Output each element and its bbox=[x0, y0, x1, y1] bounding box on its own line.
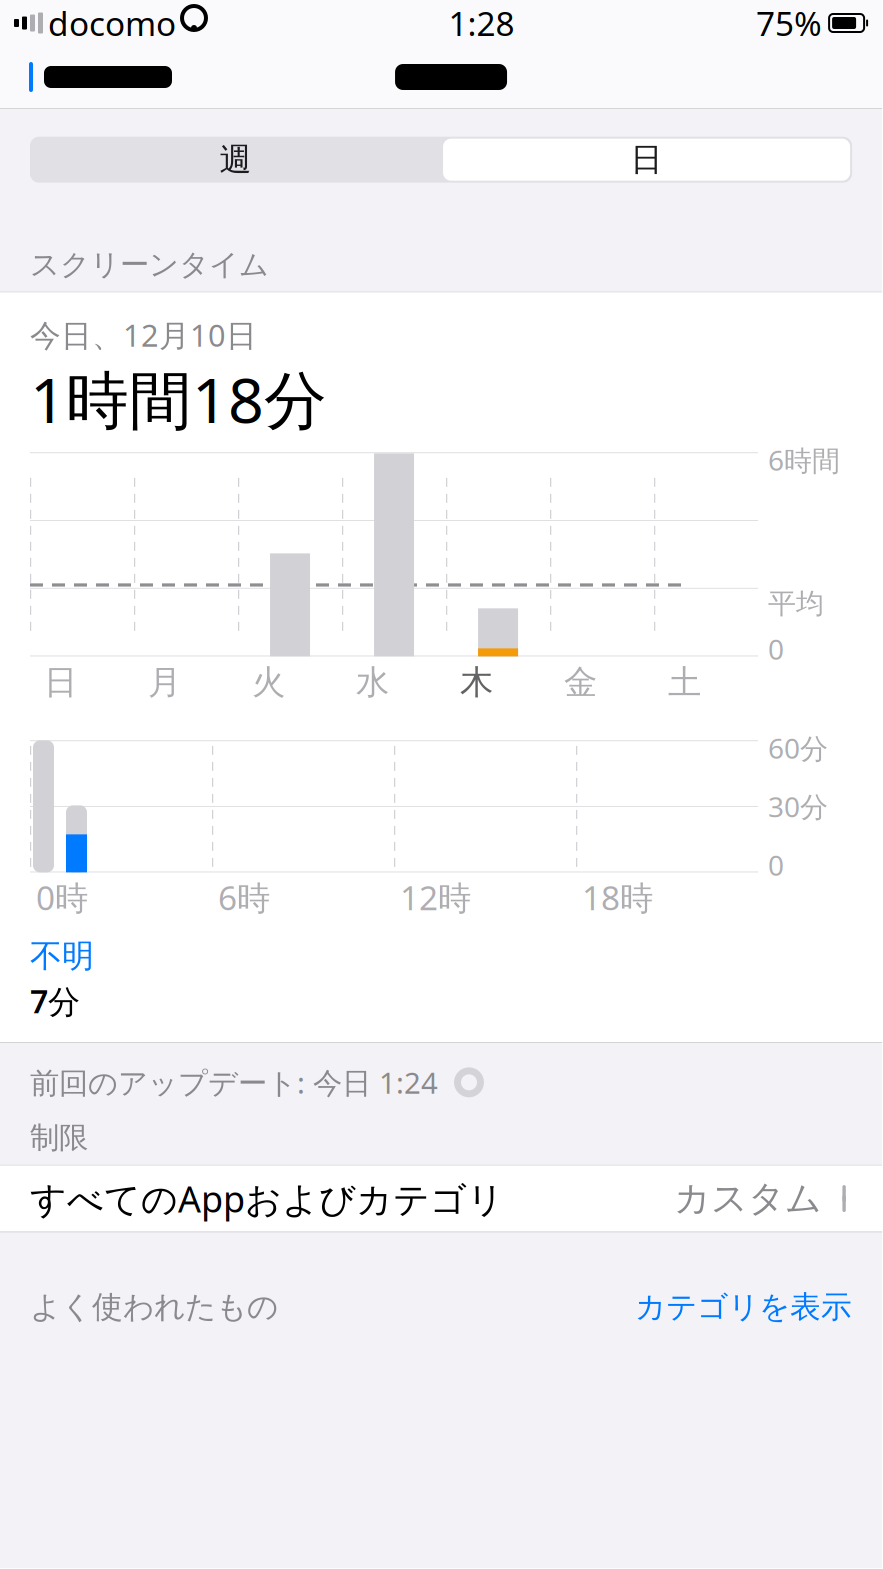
staticText: 1時間18分 bbox=[30, 357, 327, 440]
staticText: 木 bbox=[460, 662, 493, 703]
staticText: 6時 bbox=[218, 875, 270, 919]
staticText: 日 bbox=[631, 140, 663, 179]
staticText: 1:28 bbox=[449, 1, 515, 45]
staticText: カテゴリを表示 bbox=[635, 1288, 852, 1326]
staticText: 6時間 bbox=[768, 441, 840, 479]
staticText: 土 bbox=[668, 662, 701, 703]
staticText: 30分 bbox=[768, 788, 828, 825]
button[interactable]: 日 bbox=[441, 137, 852, 183]
button[interactable]: 週 bbox=[30, 137, 441, 183]
staticText: 今日、12月10日 bbox=[30, 314, 257, 355]
button[interactable]: カテゴリを表示 bbox=[635, 1288, 852, 1326]
staticText: 不明 bbox=[30, 936, 94, 976]
staticText: 週 bbox=[219, 140, 251, 179]
button[interactable]: Back bbox=[12, 49, 182, 105]
staticText: 0時 bbox=[36, 875, 88, 919]
staticText: すべてのAppおよびカテゴリ bbox=[30, 1175, 504, 1222]
staticText: 60分 bbox=[768, 729, 828, 767]
staticText: 日 bbox=[44, 662, 77, 703]
staticText: 火 bbox=[252, 662, 285, 703]
staticText: 0 bbox=[768, 846, 784, 883]
staticText: 前回のアップデート: 今日 1:24 bbox=[30, 1063, 438, 1102]
staticText: 18時 bbox=[582, 875, 653, 919]
staticText: 月 bbox=[148, 662, 181, 703]
staticText: 制限 bbox=[30, 1120, 88, 1156]
button[interactable]: すべてのAppおよびカテゴリ bbox=[0, 1166, 882, 1232]
staticText: 水 bbox=[356, 662, 389, 703]
staticText: 12時 bbox=[400, 875, 471, 919]
staticText: docomo bbox=[48, 1, 176, 45]
staticText: カスタム bbox=[674, 1176, 822, 1221]
staticText: 平均 bbox=[768, 587, 824, 621]
staticText: 金 bbox=[564, 662, 597, 703]
staticText: 75% bbox=[756, 1, 822, 45]
staticText: 7分 bbox=[30, 980, 80, 1022]
staticText: スクリーンタイム bbox=[30, 247, 269, 283]
staticText: よく使われたもの bbox=[30, 1288, 278, 1326]
staticText: 0 bbox=[768, 630, 784, 667]
